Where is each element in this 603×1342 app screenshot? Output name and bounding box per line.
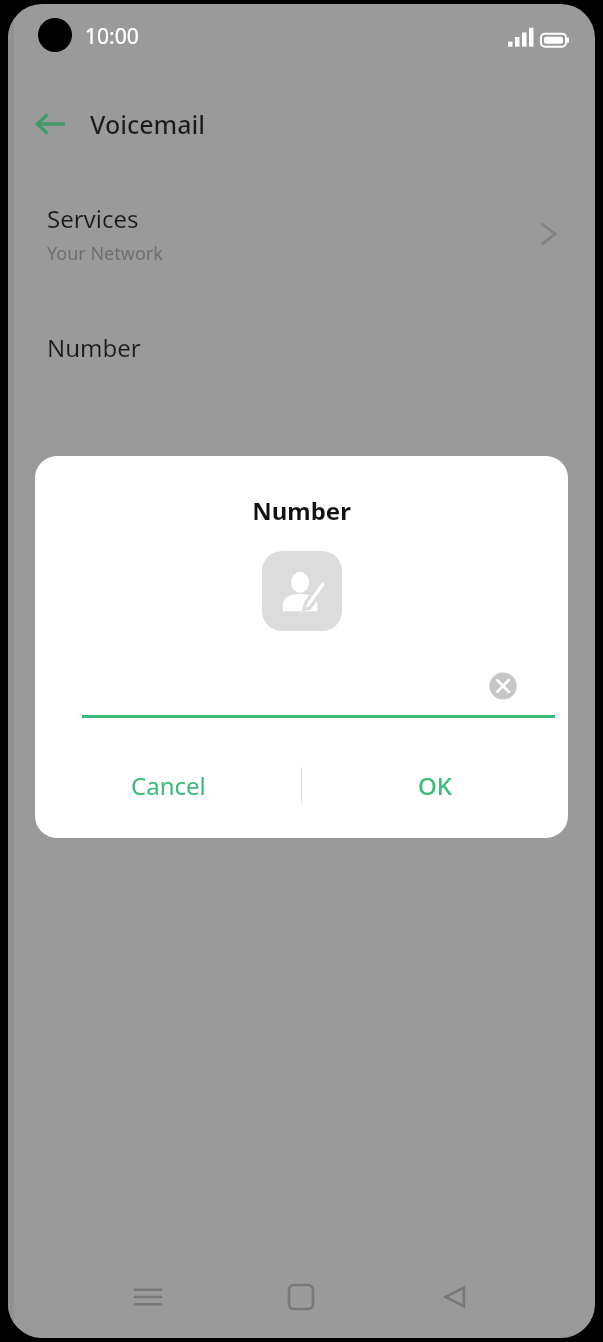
button[interactable]: Back	[425, 1267, 485, 1327]
staticText: Services	[47, 202, 139, 235]
button[interactable]: Number	[8, 308, 595, 386]
staticText: Voicemail	[90, 107, 206, 141]
button[interactable]: Services	[8, 184, 595, 284]
button[interactable]: Clear	[486, 669, 520, 703]
button[interactable]: OK	[302, 752, 568, 818]
button[interactable]: Pick contact	[262, 551, 342, 631]
staticText: Number	[47, 331, 141, 364]
button[interactable]: Back	[26, 100, 74, 148]
staticText: Number	[35, 494, 568, 527]
staticText: Your Network	[47, 241, 163, 266]
staticText: Cancel	[131, 769, 206, 802]
staticText: OK	[418, 769, 452, 802]
staticText: 10:00	[85, 22, 139, 51]
button[interactable]: Cancel	[35, 752, 301, 818]
button[interactable]: Recents	[118, 1267, 178, 1327]
button[interactable]: Home	[271, 1267, 331, 1327]
